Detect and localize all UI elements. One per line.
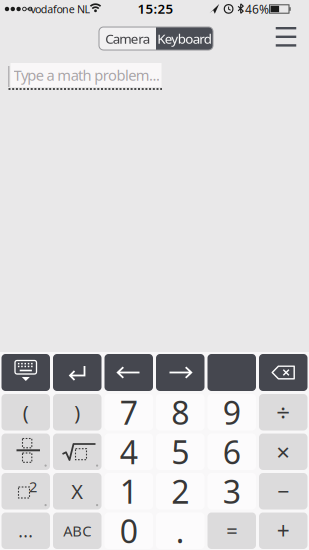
button[interactable]: .: [156, 512, 204, 549]
staticText: Type a math problem...: [13, 65, 160, 85]
staticText: 2: [171, 470, 189, 512]
staticText: .: [176, 509, 185, 550]
staticText: 15:25: [137, 0, 173, 17]
staticText: −: [277, 477, 289, 505]
staticText: X: [71, 478, 83, 505]
staticText: 2: [29, 477, 37, 496]
staticText: 9: [223, 391, 241, 433]
staticText: +: [277, 516, 290, 546]
button[interactable]: 8: [156, 394, 204, 430]
button[interactable]: 0: [104, 512, 153, 549]
button[interactable]: X: [53, 473, 101, 509]
button[interactable]: 7: [104, 394, 153, 430]
staticText: 3: [223, 470, 241, 512]
button[interactable]: Camera: [99, 27, 156, 50]
button[interactable]: ...: [1, 512, 50, 549]
staticText: ÷: [276, 396, 290, 428]
button[interactable]: Menu: [269, 22, 303, 52]
staticText: =: [226, 517, 237, 544]
button[interactable]: 6: [207, 433, 256, 470]
button[interactable]: Move right: [156, 354, 204, 391]
staticText: 8: [171, 391, 189, 433]
button[interactable]: +: [259, 512, 307, 549]
button[interactable]: Hide keyboard: [1, 354, 50, 391]
staticText: 7: [120, 391, 138, 433]
staticText: ): [74, 399, 80, 426]
staticText: Keyboard: [157, 30, 212, 47]
button[interactable]: (: [1, 394, 50, 430]
button[interactable]: 1: [104, 473, 153, 509]
button[interactable]: Square root: [53, 433, 101, 470]
button[interactable]: ): [53, 394, 101, 430]
staticText: ABC: [63, 521, 91, 540]
staticText: Camera: [105, 30, 150, 47]
button[interactable]: ABC: [53, 512, 101, 549]
button[interactable]: 9: [207, 394, 256, 430]
button[interactable]: =: [207, 512, 256, 549]
button[interactable]: 2: [156, 473, 204, 509]
staticText: 46%: [245, 1, 269, 17]
staticText: (: [23, 399, 29, 426]
button[interactable]: 4: [104, 433, 153, 470]
button[interactable]: Delete: [259, 354, 307, 391]
staticText: 4: [120, 430, 138, 473]
button[interactable]: ÷: [259, 394, 307, 430]
button[interactable]: Keyboard: [156, 27, 213, 50]
button[interactable]: Power: [1, 473, 50, 509]
staticText: ...: [18, 519, 33, 542]
button[interactable]: Return: [53, 354, 101, 391]
staticText: 1: [120, 470, 138, 512]
staticText: ×: [276, 436, 290, 468]
button[interactable]: 5: [156, 433, 204, 470]
button[interactable]: 3: [207, 473, 256, 509]
staticText: 5: [171, 430, 189, 473]
staticText: 6: [223, 430, 241, 473]
staticText: vodafone NL: [30, 2, 90, 16]
button[interactable]: −: [259, 473, 307, 509]
button[interactable]: Move left: [104, 354, 153, 391]
button[interactable]: Fraction: [1, 433, 50, 470]
button[interactable]: ×: [259, 433, 307, 470]
staticText: 0: [120, 509, 138, 550]
